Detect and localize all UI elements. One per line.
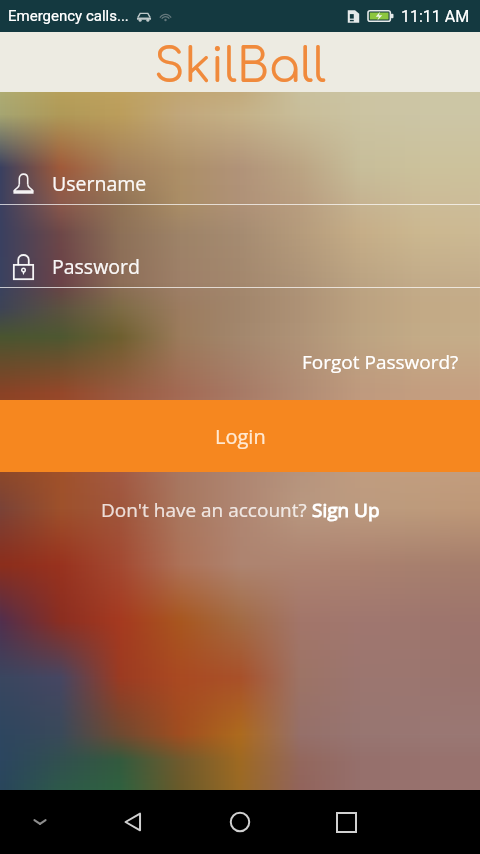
button[interactable]: Home: [186, 790, 293, 854]
staticText: Forgot Password?: [302, 349, 459, 375]
staticText: 11:11 AM: [401, 7, 470, 26]
button[interactable]: Recent apps: [293, 790, 400, 854]
button[interactable]: Username: [0, 162, 480, 204]
button[interactable]: Back: [80, 790, 186, 854]
button[interactable]: Password: [0, 245, 480, 287]
staticText: Username: [52, 170, 147, 197]
staticText: Emergency calls...: [8, 7, 129, 25]
staticText: Login: [215, 423, 266, 450]
staticText: Password: [52, 253, 140, 280]
staticText: SkilBall: [154, 41, 327, 92]
button[interactable]: Forgot Password?: [302, 343, 480, 381]
button[interactable]: Sign Up: [312, 497, 380, 523]
button[interactable]: Hide keyboard: [0, 790, 80, 854]
button[interactable]: Login: [0, 400, 480, 472]
staticText: Don't have an account?: [101, 497, 312, 523]
staticText: Sign Up: [312, 497, 380, 523]
